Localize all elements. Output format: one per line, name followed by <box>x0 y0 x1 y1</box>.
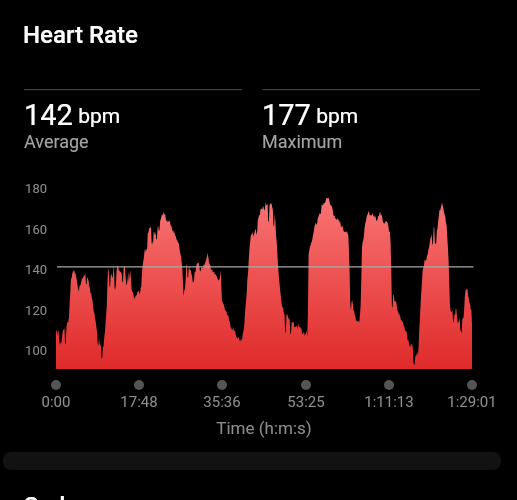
staticText: Heart Rate <box>23 21 138 49</box>
staticText: Time (h:m:s) <box>184 418 344 438</box>
staticText: 0:00 <box>12 393 100 411</box>
staticText: Average <box>24 131 89 152</box>
staticText: 1:29:01 <box>428 393 516 411</box>
staticText: bpm <box>311 104 359 129</box>
staticText: 100 <box>7 343 47 358</box>
staticText: 35:36 <box>178 393 266 411</box>
staticText: 53:25 <box>262 393 350 411</box>
staticText: Cadence <box>23 492 117 500</box>
staticText: 17:48 <box>95 393 183 411</box>
staticText: 180 <box>7 181 47 196</box>
staticText: 120 <box>7 303 47 318</box>
staticText: Maximum <box>262 131 343 152</box>
staticText: bpm <box>73 104 121 129</box>
staticText: 140 <box>7 262 47 277</box>
staticText: 160 <box>7 222 47 237</box>
staticText: 177 <box>262 98 311 132</box>
staticText: 142 <box>24 98 73 132</box>
staticText: 1:11:13 <box>345 393 433 411</box>
